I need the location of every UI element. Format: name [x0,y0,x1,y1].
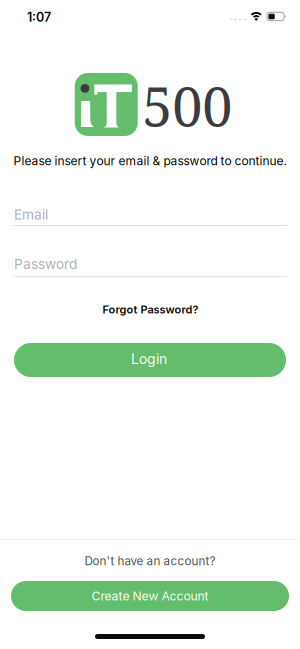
staticText: Forgot Password? [102,303,198,316]
staticText: Login [131,350,167,367]
button[interactable]: Create New Account [11,581,289,611]
staticText: 1:07 [27,10,51,25]
staticText: Please insert your email & password to c… [13,154,286,168]
staticText: Email [14,206,48,223]
staticText: Don't have an account? [84,554,215,568]
button[interactable]: Login [14,343,286,377]
button[interactable]: Email [0,204,300,226]
button[interactable]: Password [0,255,300,277]
staticText: Create New Account [91,589,208,603]
button[interactable]: Forgot Password? [102,299,198,319]
staticText: 500 [142,69,232,142]
staticText: Password [14,256,77,272]
